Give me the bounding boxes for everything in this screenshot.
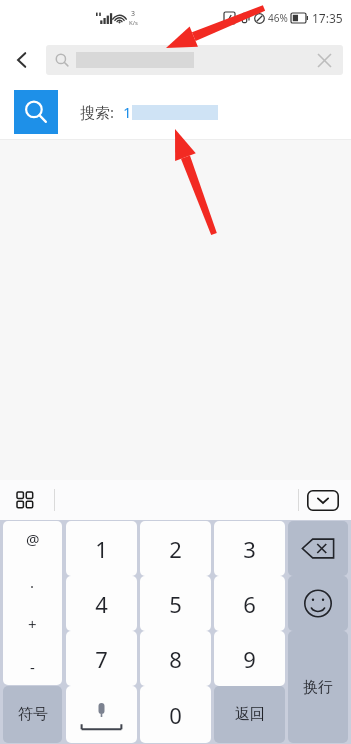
button[interactable]: 换行 [288,631,348,743]
staticText: 9 [243,644,256,674]
button[interactable]: Emoji [288,576,348,631]
button[interactable]: 符号 [3,686,62,743]
button[interactable]: 6 [214,576,285,631]
button[interactable]: Clear [46,45,343,75]
button[interactable]: 7 [66,631,137,686]
staticText: - [30,657,35,677]
button[interactable]: 5 [140,576,211,631]
staticText: 2 [169,534,182,564]
staticText: 1 [95,534,108,564]
button[interactable]: 返回 [214,686,285,743]
staticText: 4 [95,589,108,619]
staticText: 5 [169,589,182,619]
staticText: 0 [169,700,182,730]
button[interactable]: Hide keyboard [307,490,339,511]
staticText: + [28,614,37,634]
button[interactable]: 8 [140,631,211,686]
staticText: 3 [243,534,256,564]
button[interactable]: 4 [66,576,137,631]
staticText: 1 [123,102,132,122]
staticText: 符号 [18,705,48,724]
staticText: 6 [243,589,256,619]
button[interactable]: 搜索: [0,84,351,139]
button[interactable]: Keyboard layouts [10,485,40,515]
staticText: . [30,572,35,592]
button[interactable]: 2 [140,521,211,576]
button[interactable] [66,686,137,743]
staticText: 7 [95,644,108,674]
button[interactable]: 0 [140,686,211,743]
staticText: 8 [169,644,182,674]
staticText: 3 [131,9,136,19]
staticText: K/s [129,19,138,27]
button[interactable]: Backspace [288,521,348,576]
staticText: @ [26,529,40,549]
staticText: 46% [268,11,288,25]
button[interactable]: 9 [214,631,285,686]
button[interactable]: 3 [214,521,285,576]
staticText: 返回 [235,705,265,724]
staticText: 搜索: [80,102,115,122]
staticText: 换行 [303,678,333,697]
button[interactable]: @ [3,521,62,685]
staticText: 17:35 [312,10,343,26]
button[interactable]: Back [0,36,44,84]
button[interactable]: Clear [313,49,335,71]
button[interactable]: 1 [66,521,137,576]
